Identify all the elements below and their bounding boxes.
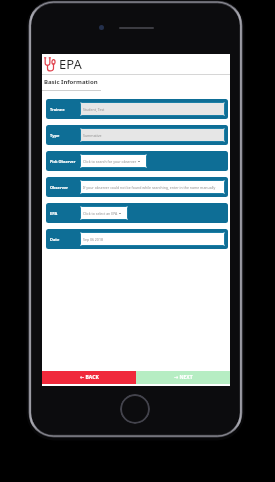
- staticText: Summative: [83, 133, 102, 138]
- button[interactable]: → NEXT: [136, 371, 230, 384]
- button[interactable]: ← BACK: [42, 371, 136, 384]
- staticText: Date: [50, 237, 60, 242]
- staticText: Trainee: [50, 107, 65, 112]
- button[interactable]: EPA: [46, 203, 228, 223]
- staticText: Click to select an EPA: [83, 211, 118, 216]
- button[interactable]: Home: [120, 394, 150, 424]
- staticText: Basic Information: [44, 78, 98, 86]
- staticText: If your observer could not be found whil…: [83, 185, 216, 190]
- button[interactable]: Date: [46, 229, 228, 249]
- staticText: EPA: [59, 55, 82, 73]
- staticText: Click to search for your observer: [83, 159, 137, 164]
- staticText: → NEXT: [174, 374, 193, 381]
- staticText: EPA: [50, 211, 58, 216]
- staticText: Pick Observer: [50, 159, 76, 164]
- button[interactable]: EPA: [44, 55, 82, 73]
- staticText: Type: [50, 133, 60, 138]
- staticText: Sep 06 2018: [83, 237, 103, 242]
- button[interactable]: Pick Observer: [46, 151, 228, 171]
- button[interactable]: Type: [46, 125, 228, 145]
- button[interactable]: Observer: [46, 177, 228, 197]
- button[interactable]: Trainee: [46, 99, 228, 119]
- staticText: Student, Test: [83, 107, 105, 112]
- staticText: ← BACK: [80, 374, 99, 381]
- staticText: Observer: [50, 185, 69, 190]
